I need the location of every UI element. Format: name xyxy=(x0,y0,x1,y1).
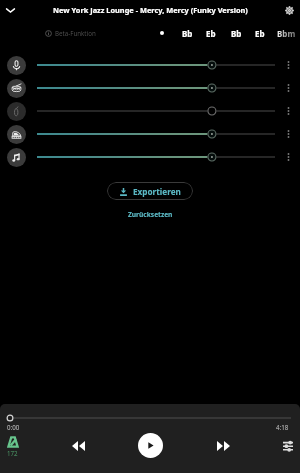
button[interactable]: More options xyxy=(280,102,296,120)
staticText: Bbm xyxy=(277,28,296,39)
button[interactable]: Metronome xyxy=(4,437,21,465)
staticText: Exportieren xyxy=(133,186,181,197)
button[interactable]: Fast forward xyxy=(210,433,236,459)
staticText: 4:18 xyxy=(276,423,289,431)
staticText: Zurücksetzen xyxy=(128,210,173,219)
staticText: Beta-Funktion xyxy=(55,29,96,37)
button[interactable]: Volume xyxy=(29,102,283,120)
button[interactable]: Instrument track xyxy=(7,102,26,121)
button[interactable]: Play xyxy=(138,433,163,458)
button[interactable]: Bb xyxy=(224,23,248,43)
staticText: New York Jazz Lounge - Mercy, Mercy (Fun… xyxy=(53,5,248,15)
button[interactable]: Mixer settings xyxy=(278,436,298,456)
staticText: 0:00 xyxy=(7,423,20,431)
button[interactable]: Instrument track xyxy=(7,125,26,144)
button[interactable]: Original key xyxy=(150,23,174,43)
button[interactable]: Seek xyxy=(0,411,300,425)
staticText: 172 xyxy=(7,449,18,457)
staticText: Eb xyxy=(206,28,216,39)
button[interactable]: Rewind xyxy=(65,433,91,459)
button[interactable]: Collapse xyxy=(1,1,19,19)
button[interactable]: Volume xyxy=(29,56,283,74)
button[interactable]: Volume xyxy=(29,148,283,166)
button[interactable]: More options xyxy=(280,125,296,143)
button[interactable]: Bb xyxy=(175,23,199,43)
button[interactable]: Instrument track xyxy=(7,56,26,75)
staticText: Bb xyxy=(231,28,242,39)
button[interactable]: More options xyxy=(280,148,296,166)
button[interactable]: Exportieren xyxy=(107,182,193,200)
button[interactable]: Beta-Funktion xyxy=(45,29,96,37)
button[interactable]: More options xyxy=(280,79,296,97)
button[interactable]: Eb xyxy=(248,23,272,43)
button[interactable]: Eb xyxy=(199,23,223,43)
button[interactable]: Instrument track xyxy=(7,79,26,98)
staticText: Bb xyxy=(182,28,193,39)
button[interactable]: More options xyxy=(280,56,296,74)
button[interactable]: Volume xyxy=(29,79,283,97)
button[interactable]: Bbm xyxy=(277,23,299,43)
button[interactable]: Volume xyxy=(29,125,283,143)
button[interactable]: Settings xyxy=(280,1,298,19)
button[interactable]: Instrument track xyxy=(7,148,26,167)
button[interactable]: Zurücksetzen xyxy=(120,207,181,222)
staticText: Eb xyxy=(255,28,265,39)
